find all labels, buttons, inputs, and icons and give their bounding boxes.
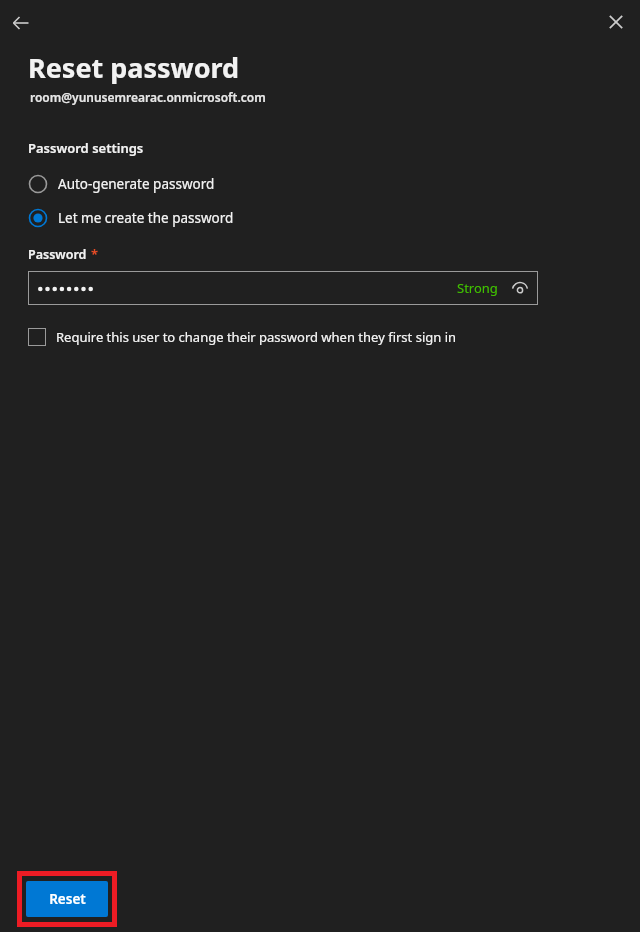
staticText: room@yunusemrearac.onmicrosoft.com [30, 89, 266, 105]
staticText: Require this user to change their passwo… [56, 328, 457, 346]
staticText: Strong [457, 279, 498, 297]
button[interactable]: Close [600, 6, 632, 38]
button[interactable]: Auto-generate password [28, 174, 215, 194]
staticText: Reset [49, 890, 86, 908]
staticText: Password [28, 246, 87, 263]
staticText: Reset password [28, 49, 240, 86]
button[interactable]: Let me create the password [28, 208, 234, 228]
staticText: Let me create the password [58, 209, 234, 227]
staticText: Password settings [28, 139, 144, 157]
button[interactable]: Require this user to change their passwo… [28, 328, 457, 346]
button[interactable]: Back [4, 6, 38, 40]
button[interactable]: Show password [507, 275, 533, 301]
button[interactable]: Reset [17, 871, 117, 927]
staticText: * [91, 245, 99, 263]
button[interactable]: Strong [28, 271, 538, 305]
staticText: Auto-generate password [58, 175, 215, 193]
